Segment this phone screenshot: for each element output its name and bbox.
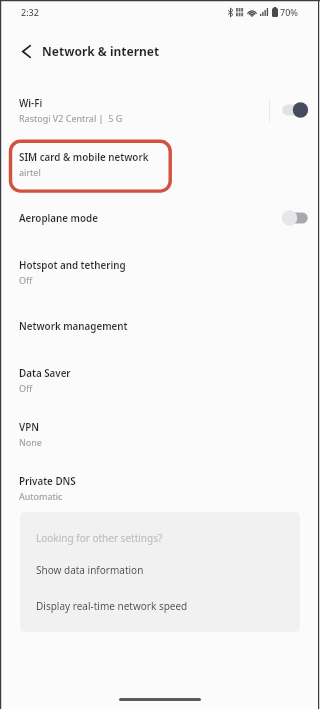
staticText: Data Saver (19, 367, 71, 380)
staticText: Display real-time network speed (36, 599, 188, 613)
staticText: Rastogi V2 Central | 5 G (19, 112, 123, 124)
staticText: Network & internet (42, 43, 160, 59)
button[interactable]: Aeroplane mode toggle (270, 191, 320, 245)
button[interactable]: SIM card & mobile network (0, 137, 320, 191)
button[interactable]: Wi-Fi toggle (270, 83, 320, 137)
staticText: Show data information (36, 563, 144, 577)
staticText: None (19, 436, 42, 448)
button[interactable]: Private DNS (0, 461, 320, 515)
staticText: SIM card & mobile network (19, 151, 149, 164)
staticText: Automatic (19, 490, 63, 502)
button[interactable]: Hotspot and tethering (0, 245, 320, 299)
staticText: VPN (19, 421, 39, 434)
button[interactable]: Data Saver (0, 353, 320, 407)
button[interactable]: Show data information (20, 554, 300, 586)
button[interactable]: Back (0, 24, 42, 78)
staticText: 2:32 (21, 6, 39, 18)
button[interactable]: Display real-time network speed (20, 590, 300, 622)
button[interactable]: Network management (0, 299, 320, 353)
staticText: Network management (19, 320, 128, 333)
staticText: Aeroplane mode (19, 212, 98, 225)
staticText: Private DNS (19, 475, 76, 488)
staticText: Off (19, 274, 33, 286)
button[interactable]: Wi-Fi (0, 83, 320, 137)
button[interactable]: VPN (0, 407, 320, 461)
staticText: airtel (19, 166, 41, 178)
staticText: Hotspot and tethering (19, 259, 126, 272)
staticText: 70% (280, 6, 298, 18)
staticText: Wi-Fi (19, 97, 43, 110)
staticText: Looking for other settings? (36, 531, 163, 545)
button[interactable]: Aeroplane mode (0, 191, 320, 245)
staticText: Off (19, 382, 33, 394)
